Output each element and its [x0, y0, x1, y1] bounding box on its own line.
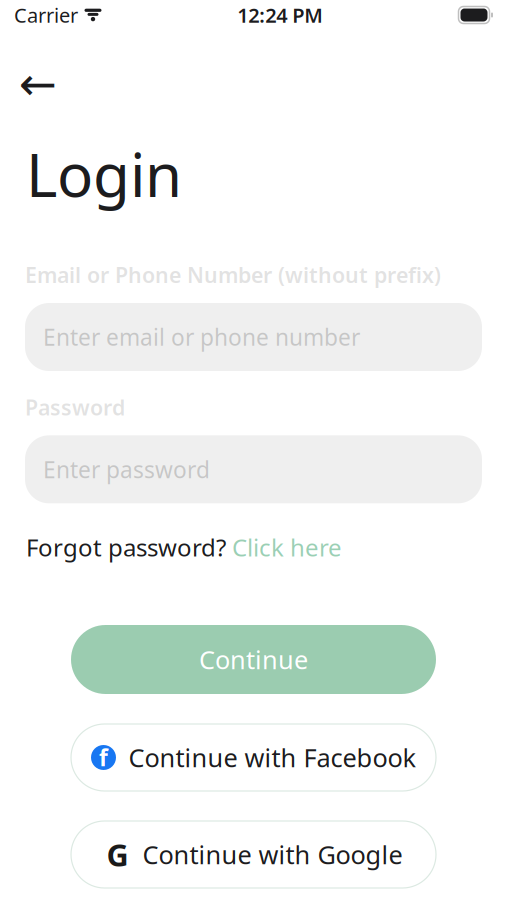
staticText: ←: [19, 58, 57, 110]
button[interactable]: Click here: [226, 531, 342, 563]
staticText: Carrier: [14, 2, 78, 28]
staticText: 12:24 PM: [237, 2, 323, 28]
button[interactable]: Enter email or phone number: [25, 303, 482, 371]
staticText: Click here: [226, 531, 342, 563]
staticText: Login: [26, 134, 182, 214]
staticText: Enter email or phone number: [43, 322, 360, 352]
staticText: Email or Phone Number (without prefix): [25, 261, 441, 289]
staticText: Enter password: [43, 454, 210, 484]
button[interactable]: f: [71, 724, 436, 791]
staticText: Continue: [199, 643, 308, 676]
staticText: Continue with Google: [142, 838, 402, 871]
button[interactable]: Enter password: [25, 435, 482, 503]
button[interactable]: G: [71, 821, 436, 888]
staticText: f: [99, 742, 108, 772]
staticText: Password: [25, 393, 125, 421]
staticText: G: [106, 834, 128, 875]
button[interactable]: Continue: [71, 625, 436, 694]
staticText: Continue with Facebook: [128, 741, 416, 774]
button[interactable]: Back: [12, 60, 64, 108]
staticText: Forgot password?: [26, 531, 226, 563]
